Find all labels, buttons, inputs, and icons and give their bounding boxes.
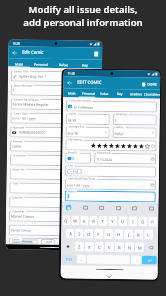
button[interactable]: Personal: [30, 59, 52, 68]
button[interactable]: Backspace: [145, 242, 157, 253]
button[interactable]: Value: [96, 89, 112, 98]
button[interactable]: Keyboard tool 4: [148, 205, 155, 212]
button[interactable]: Rate 1: [90, 143, 96, 149]
button[interactable]: Comic: [10, 139, 98, 153]
button[interactable]: Back: [11, 49, 18, 56]
button[interactable]: Keyboard tool 2: [115, 205, 122, 211]
button[interactable]: Rate 6: [120, 143, 126, 149]
button[interactable]: L: [144, 229, 153, 240]
staticText: Value: [100, 92, 109, 96]
staticText: Key: [117, 92, 123, 96]
button[interactable]: Rate 2: [96, 143, 102, 149]
button[interactable]: M: [135, 242, 144, 252]
button[interactable]: Personal: [80, 89, 96, 98]
button[interactable]: G: [104, 229, 113, 239]
button[interactable]: Pallet: [112, 125, 157, 139]
button[interactable]: Clear rating: [151, 145, 154, 148]
button[interactable]: I: [128, 216, 137, 226]
button[interactable]: ?123: [62, 254, 76, 263]
button[interactable]: 1: [113, 112, 157, 126]
button[interactable]: C: [95, 242, 104, 252]
button[interactable]: Value: [52, 59, 74, 68]
button[interactable]: D: [84, 229, 93, 239]
staticText: Z: [78, 245, 81, 250]
button[interactable]: 1/11/2024: [94, 151, 156, 165]
button[interactable]: 1: [11, 83, 99, 97]
button[interactable]: Keyboard tool 0: [82, 205, 89, 211]
button[interactable]: DONE: [142, 81, 157, 87]
button[interactable]: Rate 3: [102, 143, 108, 149]
button[interactable]: Graders: [128, 89, 144, 98]
button[interactable]: Key: [74, 59, 96, 69]
button[interactable]: H: [114, 229, 123, 239]
button[interactable]: Marvel Comics: [9, 209, 97, 223]
button[interactable]: K: [134, 229, 143, 239]
button[interactable]: Subtitle: [9, 195, 97, 209]
button[interactable]: [67, 156, 74, 160]
button[interactable]: Key: [112, 89, 128, 98]
staticText: Characters: [144, 92, 160, 97]
button[interactable]: + Add: [41, 239, 56, 245]
button[interactable]: Rate 8: [132, 143, 138, 149]
button[interactable]: Super Heroes: [11, 238, 39, 245]
button[interactable]: Characters: [144, 89, 160, 99]
button[interactable]: Main: [63, 88, 80, 97]
button[interactable]: Spider-Boy, Vol. 1: [11, 69, 99, 83]
button[interactable]: 24.83: [66, 111, 110, 125]
button[interactable]: Enter: [142, 255, 157, 265]
button[interactable]: Panini Medina Regular: [10, 97, 99, 111]
button[interactable]: Series Group: [9, 223, 97, 237]
button[interactable]: Back: [66, 79, 73, 86]
button[interactable]: W: [71, 215, 79, 226]
button[interactable]: N: [125, 242, 134, 252]
button[interactable]: Y: [108, 216, 117, 226]
button[interactable]: X: [85, 242, 94, 252]
button[interactable]: Q: [62, 215, 70, 225]
staticText: Variant Description: [14, 97, 40, 102]
button[interactable]: Box 98: [65, 124, 110, 138]
button[interactable]: T: [98, 216, 107, 226]
button[interactable]: Space: [87, 255, 130, 264]
button[interactable]: Story Arc: [9, 167, 98, 181]
button[interactable]: Period: [131, 255, 141, 264]
button[interactable]: Shift: [62, 241, 74, 251]
button[interactable]: Rate 10: [144, 143, 150, 150]
button[interactable]: 75960620160001: [10, 125, 98, 139]
staticText: W: [73, 218, 77, 224]
button[interactable]: Rate 5: [114, 143, 120, 149]
button[interactable]: F: [94, 229, 103, 239]
staticText: Tag: [68, 163, 73, 167]
button[interactable]: V: [105, 242, 114, 252]
button[interactable]: Google: [65, 204, 72, 210]
button[interactable]: B: [115, 242, 124, 252]
button[interactable]: J: [124, 229, 133, 239]
button[interactable]: Keyboard tool 1: [98, 205, 105, 211]
staticText: E: [83, 219, 86, 224]
button[interactable]: S: [75, 228, 83, 239]
button[interactable]: [65, 190, 156, 203]
button[interactable]: Z: [75, 241, 84, 252]
staticText: Genre: [116, 125, 125, 129]
staticText: Value: [69, 111, 77, 115]
button[interactable]: E: [80, 216, 88, 226]
button[interactable]: Crossover: [10, 153, 98, 167]
button[interactable]: [68, 104, 72, 108]
staticText: Q: [64, 218, 68, 223]
button[interactable]: + Add: [67, 168, 82, 175]
button[interactable]: R: [89, 216, 97, 226]
button[interactable]: P: [148, 216, 157, 227]
button[interactable]: Rate 7: [126, 143, 132, 149]
button[interactable]: Rate 4: [108, 143, 114, 149]
button[interactable]: Save: [92, 50, 99, 58]
button[interactable]: A: [66, 228, 74, 238]
button[interactable]: mm / dd / yyyy: [65, 176, 156, 191]
button[interactable]: Comma: [77, 254, 86, 264]
button[interactable]: Main: [8, 58, 30, 68]
button[interactable]: U: [118, 216, 127, 226]
button[interactable]: Keyboard tool 3: [131, 205, 138, 211]
staticText: S: [78, 232, 81, 237]
button[interactable]: O: [138, 216, 147, 226]
button[interactable]: Rate 9: [138, 143, 144, 149]
button[interactable]: Title: [9, 181, 97, 195]
button[interactable]: mm / dd / yyyy: [10, 111, 98, 125]
